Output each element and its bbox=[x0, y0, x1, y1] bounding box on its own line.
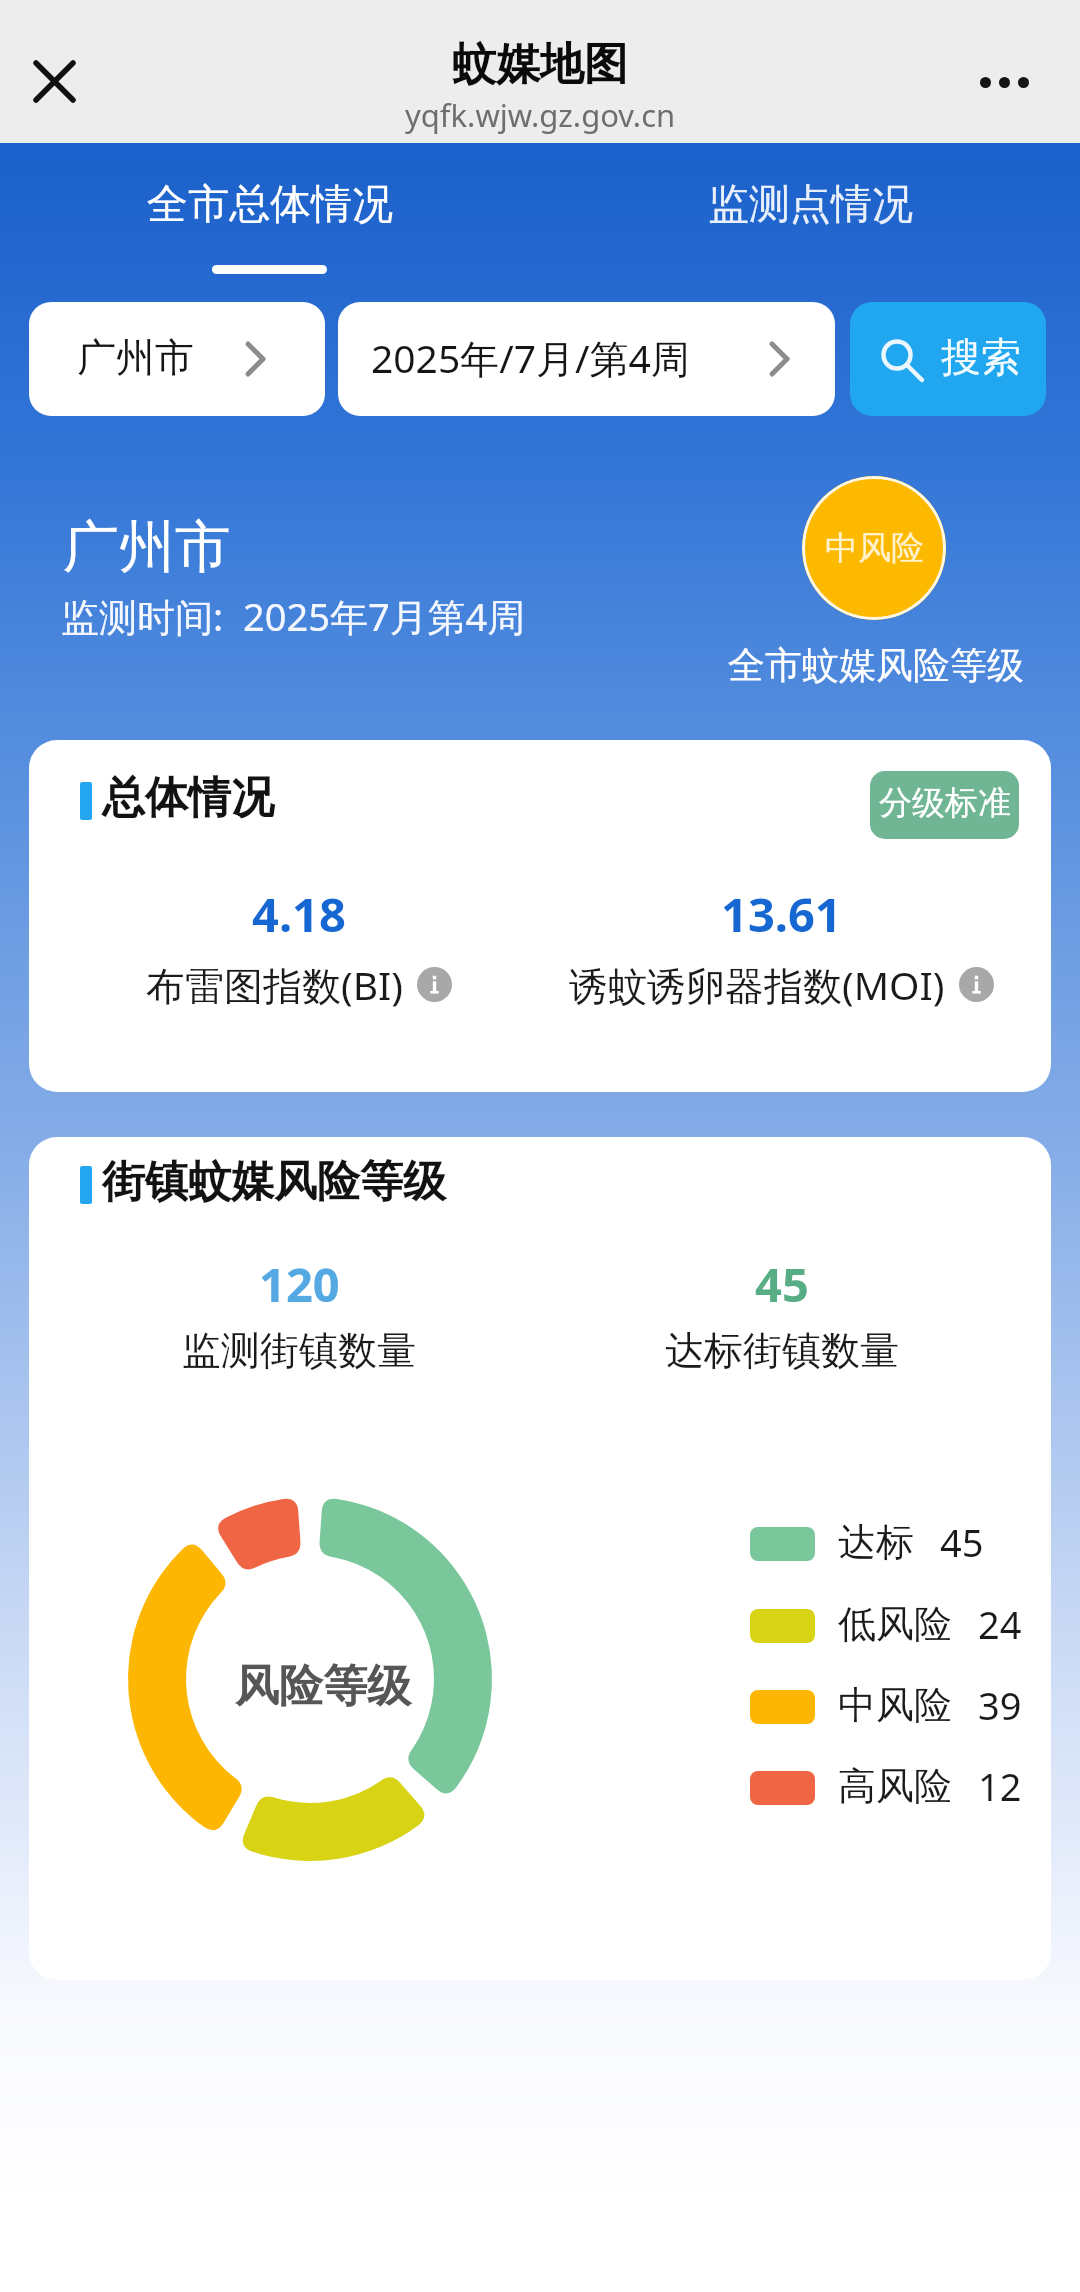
button[interactable]: More information bbox=[959, 967, 994, 1002]
button[interactable]: 广州市 bbox=[29, 302, 325, 416]
staticText: 诱蚊诱卵器指数(MOI) bbox=[569, 958, 945, 1011]
staticText: 监测时间: 2025年7月第4周 bbox=[61, 590, 526, 642]
staticText: 中风险 bbox=[825, 527, 924, 569]
button[interactable]: Close bbox=[14, 41, 96, 123]
staticText: 布雷图指数(BI) bbox=[146, 958, 403, 1011]
staticText: 全市蚊媒风险等级 bbox=[728, 642, 1024, 689]
staticText: 街镇蚊媒风险等级 bbox=[102, 1155, 446, 1209]
staticText: 13.61 bbox=[721, 882, 842, 942]
staticText: 39 bbox=[978, 1679, 1022, 1731]
button[interactable]: 监测点情况 bbox=[540, 143, 1080, 281]
staticText: 搜索 bbox=[941, 332, 1021, 382]
staticText: 总体情况 bbox=[102, 771, 274, 825]
staticText: 监测街镇数量 bbox=[182, 1326, 416, 1375]
staticText: 2025年/7月/第4周 bbox=[371, 331, 690, 384]
button[interactable]: 分级标准 bbox=[870, 771, 1019, 839]
staticText: 45 bbox=[940, 1516, 984, 1568]
staticText: yqfk.wjw.gz.gov.cn bbox=[405, 94, 676, 136]
button[interactable]: 中风险 bbox=[802, 476, 946, 620]
staticText: 低风险 bbox=[838, 1600, 952, 1648]
staticText: 24 bbox=[978, 1598, 1022, 1650]
staticText: 45 bbox=[755, 1252, 809, 1312]
staticText: 分级标准 bbox=[879, 782, 1011, 824]
staticText: 12 bbox=[978, 1760, 1022, 1812]
staticText: 120 bbox=[259, 1252, 340, 1312]
staticText: 广州市 bbox=[63, 512, 231, 583]
staticText: 全市总体情况 bbox=[147, 179, 393, 231]
button[interactable]: More information bbox=[417, 967, 452, 1002]
staticText: 风险等级 bbox=[235, 1659, 411, 1714]
staticText: 达标 bbox=[838, 1518, 914, 1566]
button[interactable]: More options bbox=[960, 52, 1048, 112]
button[interactable]: 搜索 bbox=[850, 302, 1046, 416]
staticText: 广州市 bbox=[77, 333, 194, 382]
staticText: 中风险 bbox=[838, 1681, 952, 1729]
staticText: 4.18 bbox=[252, 882, 346, 942]
staticText: 蚊媒地图 bbox=[452, 37, 628, 92]
staticText: 高风险 bbox=[838, 1762, 952, 1810]
button[interactable]: 全市总体情况 bbox=[0, 143, 540, 281]
staticText: 监测点情况 bbox=[708, 179, 913, 231]
button[interactable]: 2025年/7月/第4周 bbox=[338, 302, 835, 416]
staticText: 达标街镇数量 bbox=[665, 1326, 899, 1375]
